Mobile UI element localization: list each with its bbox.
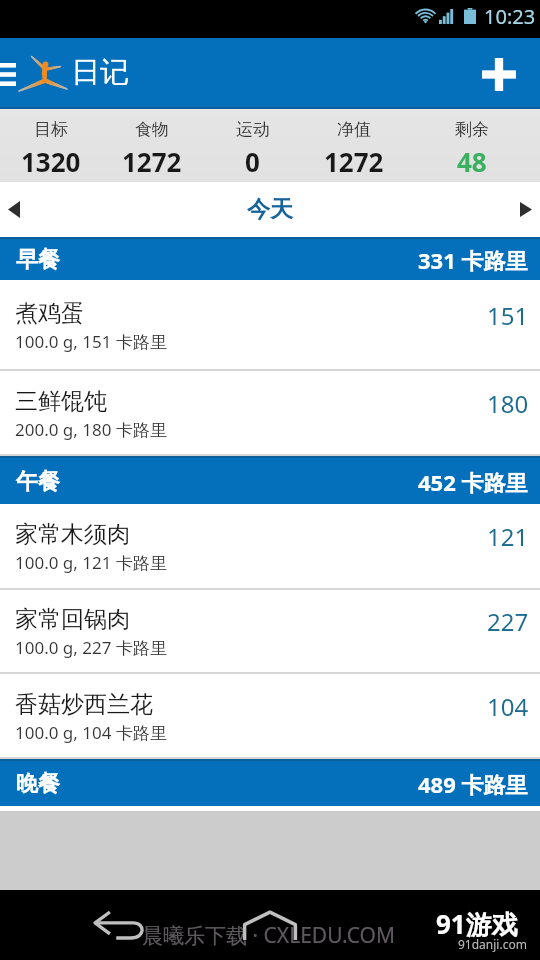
button[interactable]: Home [235,890,305,960]
button[interactable]: 煮鸡蛋 [0,280,540,371]
staticText: 目标 [34,119,68,140]
button[interactable]: Add [466,41,532,107]
staticText: 227 [487,605,529,638]
staticText: 早餐 [16,246,60,274]
staticText: 香菇炒西兰花 [15,690,479,719]
button[interactable]: 家常回锅肉 [0,590,540,674]
staticText: 0 [245,144,260,179]
button[interactable]: 食物 [101,109,202,182]
button[interactable]: 午餐 [0,456,540,504]
staticText: 100.0 g, 104 卡路里 [15,721,167,744]
staticText: 家常回锅肉 [15,605,479,634]
staticText: 100.0 g, 151 卡路里 [15,330,167,353]
button[interactable]: Previous day [0,182,46,237]
staticText: 1320 [21,144,81,179]
staticText: 午餐 [16,468,60,496]
staticText: 48 [457,144,487,179]
staticText: 晨曦乐下载 · CXLEDU.COM [142,921,395,950]
staticText: 1272 [122,144,182,179]
staticText: 家常木须肉 [15,520,479,549]
staticText: 91游戏 [436,906,518,942]
staticText: 晚餐 [16,770,60,798]
button[interactable]: 剩余 [404,109,540,182]
button[interactable]: 运动 [202,109,303,182]
button[interactable]: 家常木须肉 [0,504,540,590]
button[interactable]: Menu [0,46,28,102]
staticText: 100.0 g, 121 卡路里 [15,551,167,574]
button[interactable]: 香菇炒西兰花 [0,674,540,759]
staticText: 运动 [236,119,270,140]
button[interactable]: 晚餐 [0,759,540,806]
staticText: 200.0 g, 180 卡路里 [15,418,167,441]
button[interactable]: 早餐 [0,237,540,280]
button[interactable]: 三鲜馄饨 [0,371,540,456]
staticText: 10:23 [484,3,536,30]
button[interactable]: 今天 [247,195,293,224]
staticText: 180 [487,387,529,420]
staticText: 食物 [135,119,169,140]
button[interactable]: Back [85,890,155,960]
staticText: 日记 [71,54,129,91]
staticText: 91danji.com [458,936,527,952]
staticText: 100.0 g, 227 卡路里 [15,636,167,659]
staticText: 剩余 [455,119,489,140]
staticText: 净值 [337,119,371,140]
staticText: 151 [487,299,529,332]
button[interactable]: 目标 [0,109,101,182]
staticText: 三鲜馄饨 [15,387,479,416]
staticText: 121 [487,520,529,553]
button[interactable]: Next day [494,182,540,237]
staticText: 今天 [247,195,293,224]
staticText: 104 [487,690,529,723]
staticText: 331 卡路里 [418,245,528,275]
button[interactable]: 净值 [303,109,404,182]
staticText: 煮鸡蛋 [15,299,479,328]
staticText: 489 卡路里 [418,769,528,799]
staticText: 1272 [324,144,384,179]
staticText: 452 卡路里 [418,467,528,497]
